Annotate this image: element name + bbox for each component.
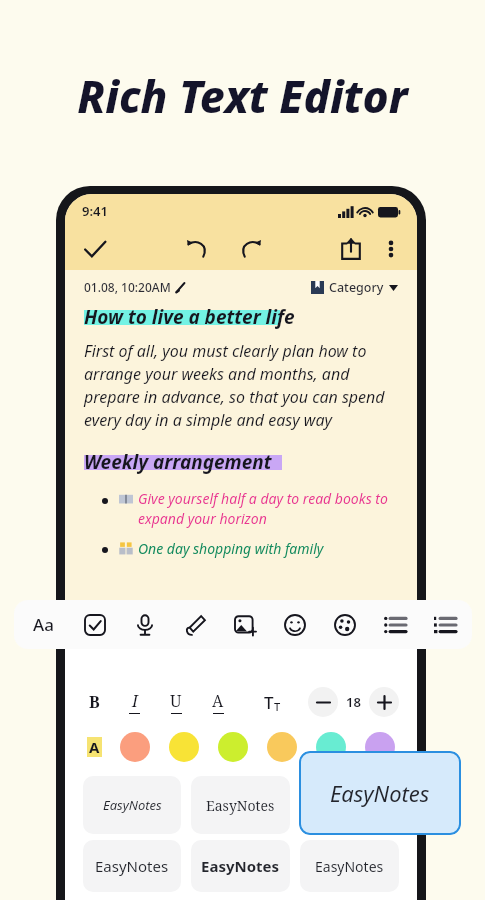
staticText: EasyNotes <box>330 778 430 808</box>
button[interactable]: B <box>85 689 104 715</box>
staticText: A <box>89 737 100 757</box>
button[interactable]: EasyNotes <box>191 840 290 892</box>
staticText: How to live a better life <box>84 304 295 330</box>
button[interactable] <box>316 732 346 762</box>
staticText: One day shopping with family <box>138 539 324 558</box>
button[interactable]: Bulleted list <box>382 612 408 638</box>
staticText: U <box>170 690 182 712</box>
button[interactable]: A <box>208 688 228 716</box>
staticText: T <box>264 691 274 714</box>
button[interactable]: Decrease font size <box>308 687 338 717</box>
button[interactable]: EasyNotes <box>191 776 290 834</box>
button[interactable]: Theme colour <box>332 612 358 638</box>
staticText: I <box>132 690 138 712</box>
button[interactable]: A <box>87 737 102 757</box>
button[interactable]: Draw <box>182 612 208 638</box>
staticText: Give yourself half a day to read books t… <box>138 489 398 529</box>
staticText: 18 <box>346 693 361 711</box>
button[interactable]: I <box>125 688 144 716</box>
staticText: Weekly arrangement <box>84 449 272 475</box>
staticText: First of all, you must clearly plan how … <box>84 340 398 431</box>
staticText: EasyNotes <box>315 857 384 876</box>
button[interactable]: Add image <box>232 612 258 638</box>
staticText: B <box>89 691 100 713</box>
button[interactable]: Share <box>338 236 364 262</box>
button[interactable] <box>365 732 395 762</box>
button[interactable]: EasyNotes <box>299 751 461 835</box>
button[interactable]: EasyNotes <box>83 840 181 892</box>
button[interactable]: Numbered list <box>432 612 458 638</box>
staticText: 01.08, 10:20AM <box>84 279 171 295</box>
staticText: Category <box>329 279 384 296</box>
staticText: T <box>274 699 281 714</box>
button[interactable]: Aa <box>30 610 57 639</box>
staticText: EasyNotes <box>206 796 275 815</box>
button[interactable]: EasyNotes <box>300 840 399 892</box>
staticText: A <box>212 690 224 712</box>
button[interactable]: Undo <box>184 235 212 263</box>
button[interactable] <box>218 732 248 762</box>
button[interactable]: Increase font size <box>369 687 399 717</box>
staticText: 9:41 <box>82 202 108 220</box>
button[interactable] <box>120 732 150 762</box>
button[interactable]: Save <box>80 234 110 264</box>
staticText: EasyNotes <box>201 856 280 876</box>
staticText: EasyNotes <box>95 856 169 876</box>
staticText: EasyNotes <box>103 796 162 814</box>
button[interactable]: Redo <box>236 235 264 263</box>
button[interactable]: Voice recording <box>132 612 158 638</box>
button[interactable]: U <box>166 688 186 716</box>
button[interactable]: More options <box>380 238 402 260</box>
button[interactable]: Emoji <box>282 612 308 638</box>
staticText: Rich Text Editor <box>0 66 485 126</box>
button[interactable]: T <box>261 688 284 717</box>
button[interactable] <box>267 732 297 762</box>
button[interactable]: Checklist <box>82 612 108 638</box>
button[interactable] <box>169 732 199 762</box>
button[interactable]: Category <box>311 279 398 296</box>
staticText: Aa <box>33 613 54 636</box>
button[interactable]: EasyNotes <box>83 776 181 834</box>
